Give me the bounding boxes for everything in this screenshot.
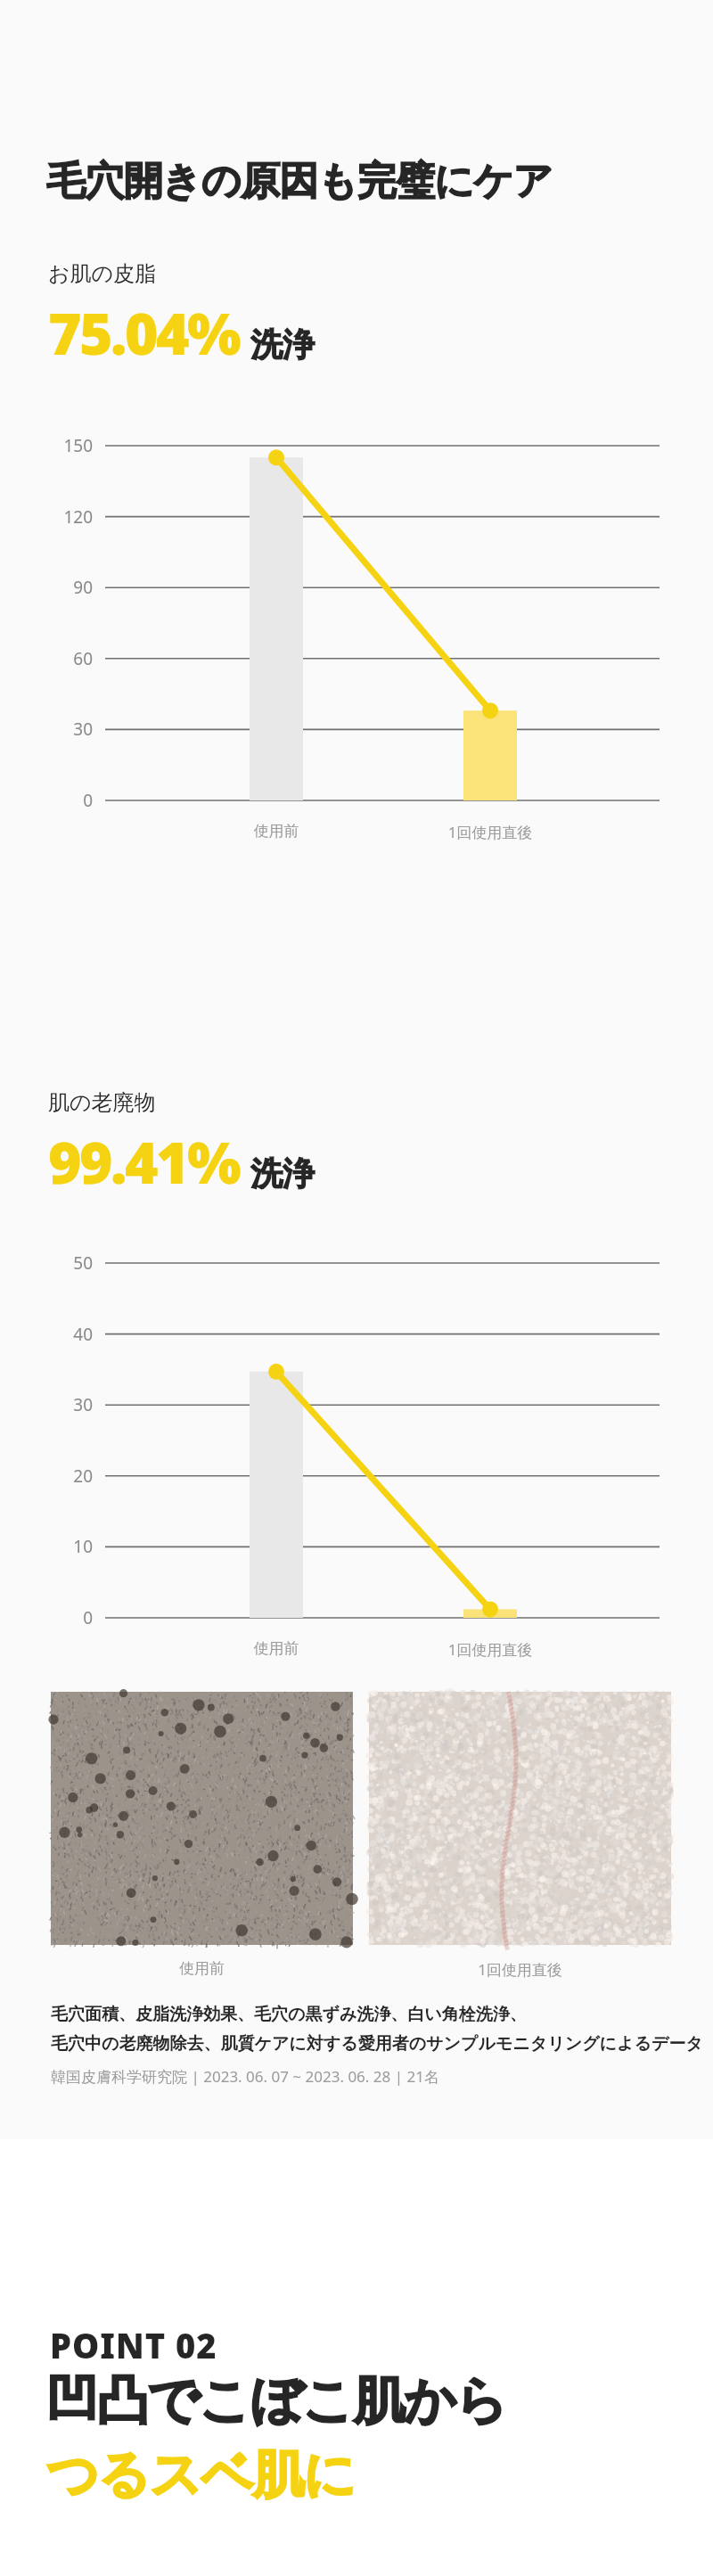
staticText: 30 [7,718,93,741]
staticText: 1回使用直後 [369,1959,671,1980]
staticText: 150 [7,434,93,457]
staticText: 75.04% [48,294,240,372]
staticText: 30 [7,1393,93,1416]
staticText: 90 [7,576,93,599]
staticText: お肌の皮脂 [48,260,157,287]
staticText: 毛穴面積、皮脂洗浄効果、毛穴の黒ずみ洗浄、白い角栓洗浄、 [51,2004,527,2025]
staticText: 50 [7,1251,93,1275]
staticText: 凹凸でこぼこ肌から [46,2368,507,2433]
staticText: 毛穴中の老廃物除去、肌質ケアに対する愛用者のサンプルモニタリングによるデータ [51,2033,703,2055]
staticText: 0 [7,1606,93,1629]
staticText: 10 [7,1535,93,1558]
staticText: 1回使用直後 [410,822,570,842]
staticText: 99.41% [48,1123,240,1201]
staticText: 肌の老廃物 [48,1089,156,1116]
staticText: 60 [7,647,93,670]
staticText: 使用前 [205,822,348,841]
staticText: 0 [7,789,93,812]
staticText: 使用前 [205,1639,348,1658]
staticText: 40 [7,1323,93,1346]
staticText: POINT 02 [50,2322,217,2368]
staticText: 韓国皮膚科学研究院 | 2023. 06. 07 ~ 2023. 06. 28 … [51,2066,439,2087]
staticText: 使用前 [51,1959,353,1978]
staticText: 毛穴開きの原因も完璧にケア [46,157,553,206]
staticText: 120 [7,505,93,529]
staticText: 1回使用直後 [410,1639,570,1660]
staticText: 20 [7,1464,93,1488]
staticText: 洗浄 [250,324,315,365]
staticText: 洗浄 [250,1153,315,1194]
staticText: つるスベ肌に [46,2442,355,2507]
